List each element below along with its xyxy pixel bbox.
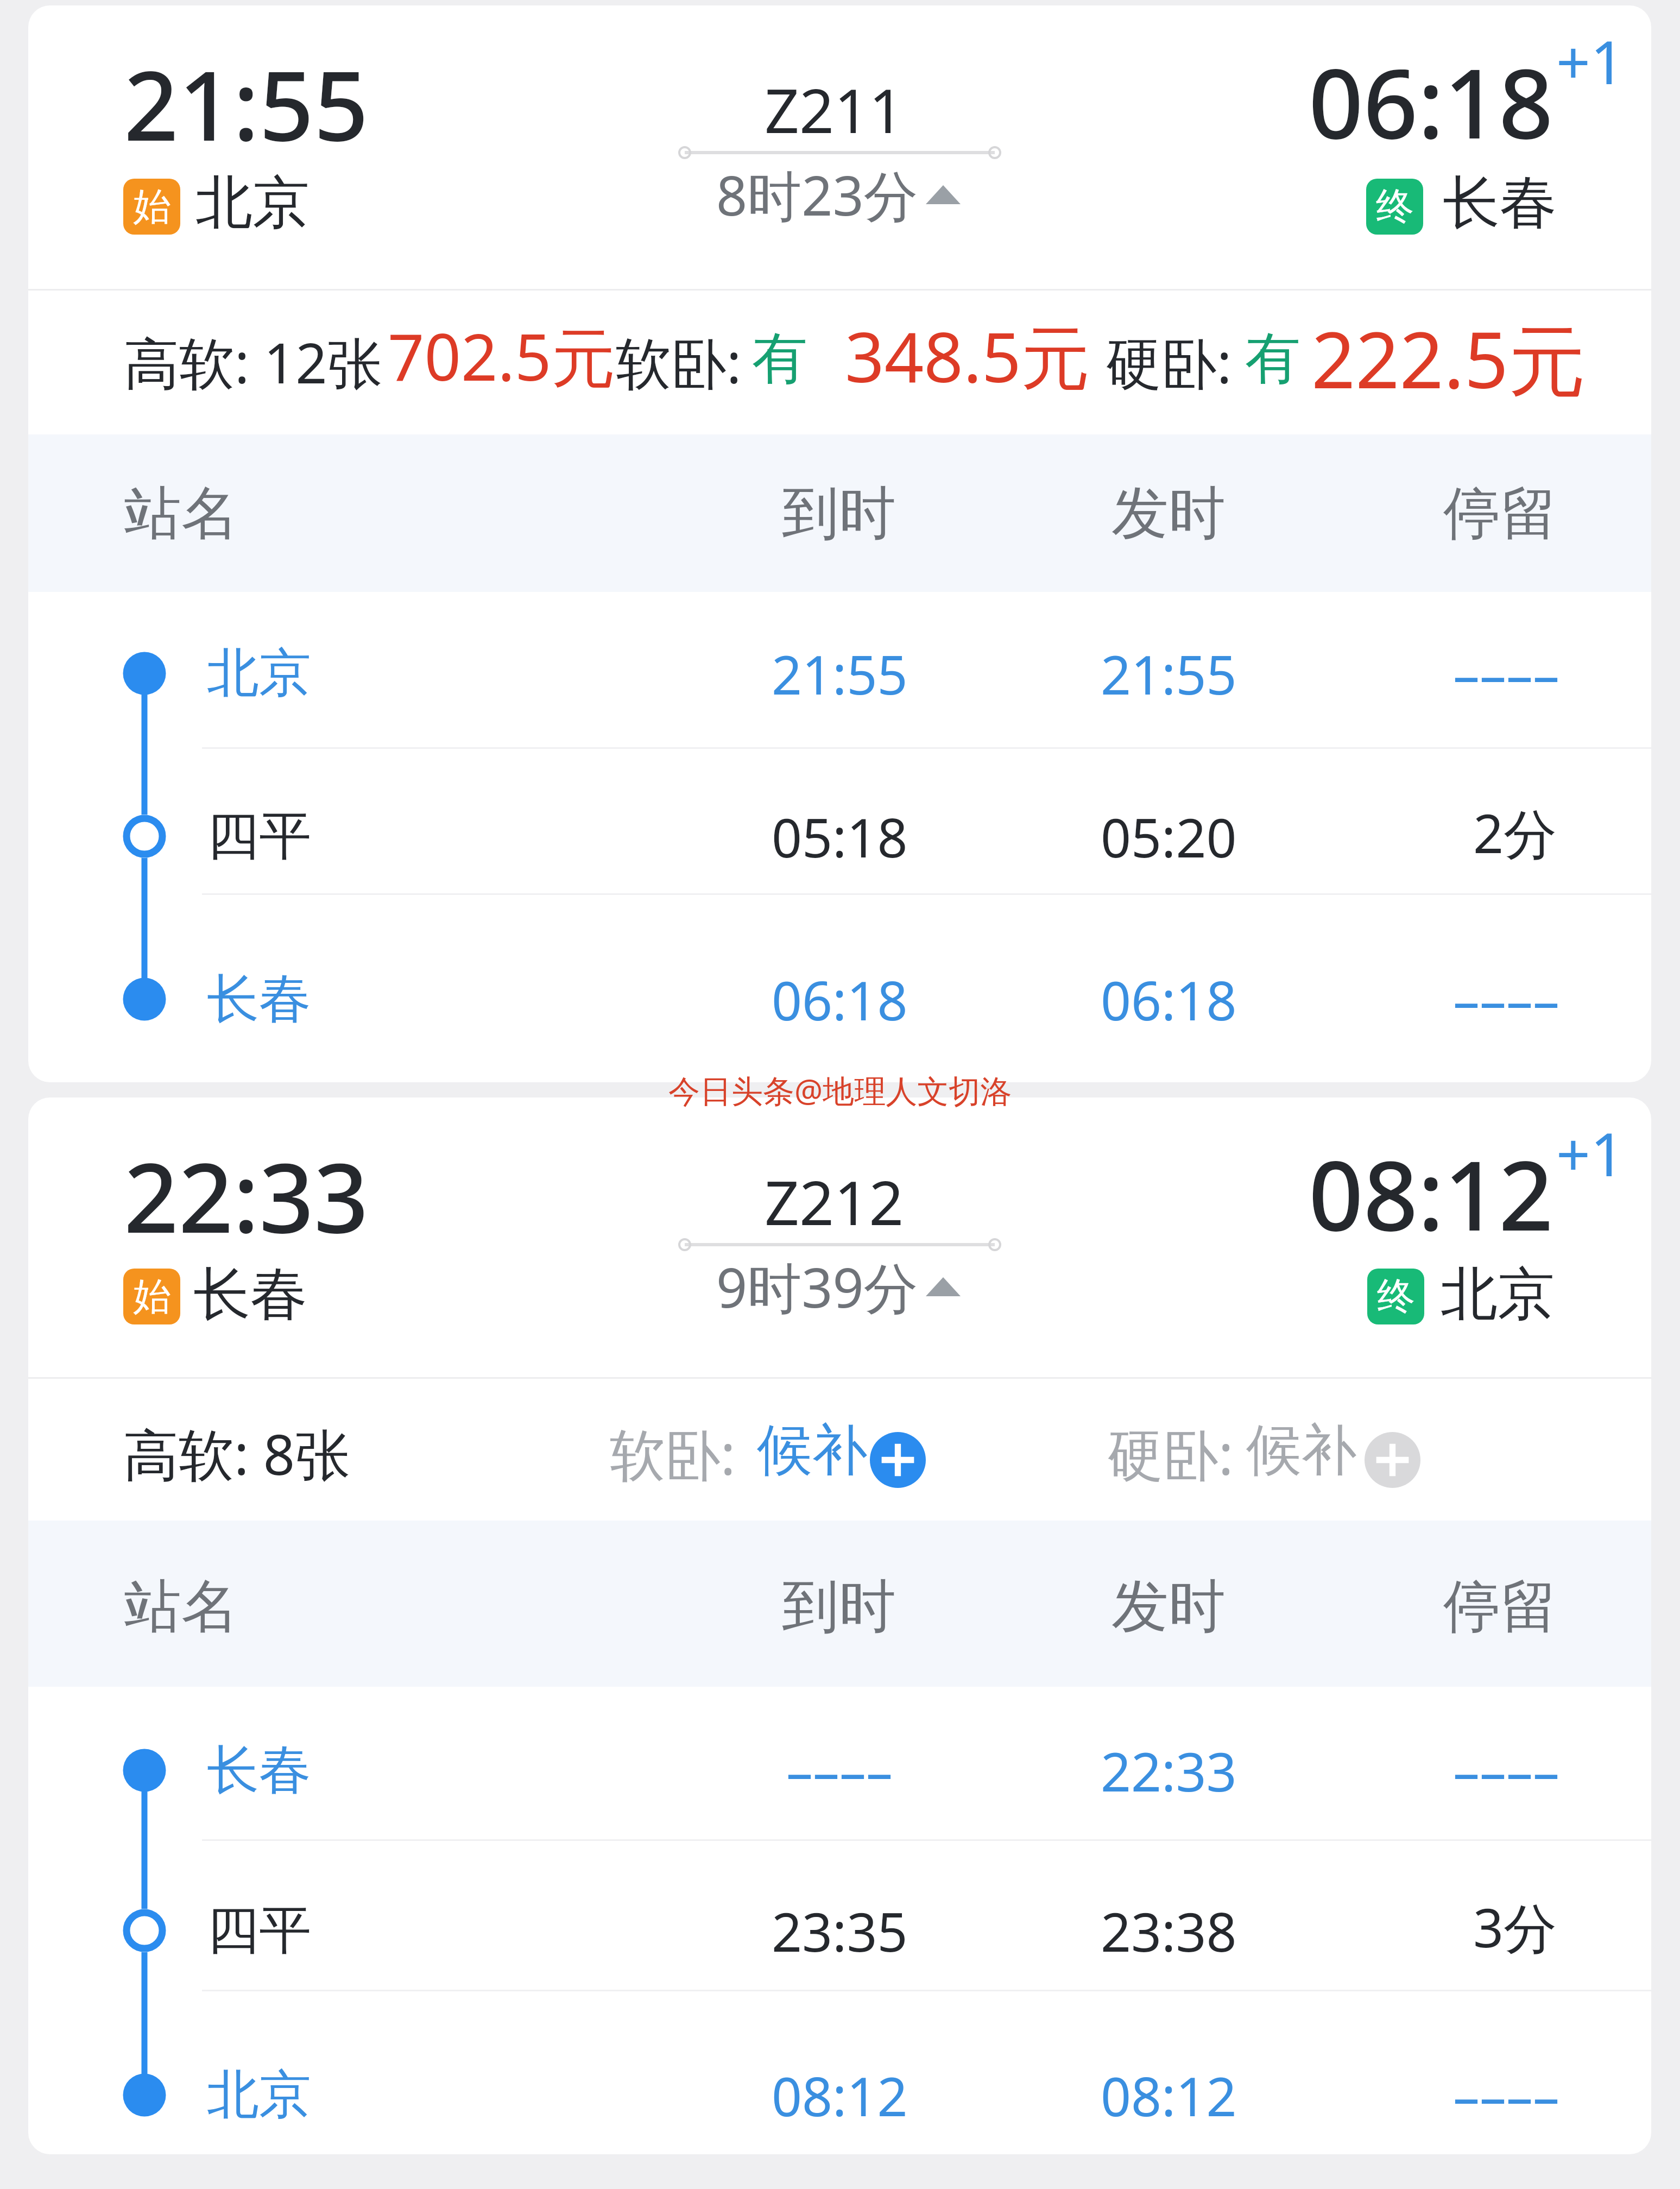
staticText: 高软: 8张 [123, 1416, 351, 1491]
staticText: 348.5元 [845, 308, 1090, 402]
staticText: 站名 [124, 1571, 238, 1643]
button[interactable]: 四平 [28, 1841, 1651, 1990]
staticText: +1 [1556, 20, 1625, 102]
button[interactable]: 长春 [28, 1687, 1651, 1839]
staticText: 9时39分 [716, 1250, 918, 1324]
button[interactable]: 北京 [28, 1991, 1651, 2154]
staticText: 08:12 [772, 2059, 908, 2131]
staticText: 发时 [1111, 478, 1226, 550]
staticText: 四平 [207, 1898, 311, 1964]
staticText: 到时 [782, 478, 896, 550]
staticText: 发时 [1111, 1571, 1226, 1643]
staticText: –––– [1453, 1734, 1560, 1807]
staticText: –––– [786, 1734, 893, 1807]
button[interactable]: 北京 [28, 592, 1651, 747]
staticText: 06:18 [772, 963, 908, 1036]
button[interactable]: 21:55 [28, 5, 1651, 1082]
staticText: 软卧: [610, 1416, 736, 1491]
staticText: 222.5元 [1311, 306, 1586, 411]
staticText: 21:55 [1101, 638, 1237, 710]
staticText: 2分 [1473, 796, 1557, 869]
staticText: 05:20 [1101, 800, 1237, 873]
staticText: 06:18 [1101, 963, 1237, 1036]
staticText: 21:55 [124, 39, 369, 169]
staticText: 四平 [207, 804, 311, 869]
staticText: 702.5元 [388, 312, 616, 400]
staticText: 始 [133, 183, 171, 231]
staticText: 停留 [1443, 1571, 1557, 1643]
staticText: 到时 [782, 1571, 896, 1643]
staticText: –––– [1453, 638, 1560, 710]
staticText: 停留 [1443, 478, 1557, 550]
button[interactable]: 22:33 [28, 1097, 1651, 2154]
staticText: 站名 [124, 478, 238, 550]
staticText: 8时23分 [716, 157, 918, 232]
staticText: 08:12 [1101, 2059, 1237, 2131]
staticText: 软卧: [616, 324, 742, 400]
staticText: +1 [1556, 1112, 1625, 1194]
staticText: 22:33 [124, 1131, 369, 1261]
staticText: 有 [752, 324, 807, 394]
staticText: 北京 [207, 2062, 311, 2128]
staticText: 长春 [207, 967, 311, 1032]
staticText: 北京 [195, 167, 310, 239]
button[interactable]: Add waitlist 硬卧 [1365, 1432, 1420, 1488]
staticText: 长春 [1443, 167, 1557, 239]
staticText: 05:18 [772, 800, 908, 873]
staticText: 长春 [207, 1738, 311, 1803]
staticText: 终 [1376, 183, 1414, 231]
button[interactable]: 长春 [28, 895, 1651, 1082]
staticText: 终 [1377, 1273, 1415, 1321]
button[interactable]: 四平 [28, 749, 1651, 893]
staticText: 硬卧: [1108, 1416, 1234, 1491]
button[interactable]: Add waitlist 软卧 [870, 1432, 926, 1488]
staticText: Z211 [765, 68, 904, 151]
staticText: Z212 [765, 1160, 904, 1243]
staticText: 23:35 [772, 1895, 908, 1967]
staticText: 22:33 [1101, 1734, 1237, 1807]
staticText: 今日头条@地理人文切洛 [668, 1069, 1012, 1112]
staticText: –––– [1453, 963, 1560, 1036]
staticText: 硬卧: [1106, 324, 1232, 400]
staticText: 北京 [1441, 1259, 1555, 1330]
staticText: 21:55 [772, 638, 908, 710]
staticText: 23:38 [1101, 1895, 1237, 1967]
staticText: 候补 [757, 1416, 868, 1485]
staticText: –––– [1453, 2059, 1560, 2131]
staticText: 有 [1245, 324, 1300, 394]
staticText: 始 [133, 1273, 171, 1321]
staticText: 3分 [1473, 1890, 1557, 1963]
staticText: 08:12 [1309, 1128, 1553, 1259]
staticText: 06:18 [1309, 36, 1553, 167]
staticText: 高软: 12张 [124, 324, 383, 400]
staticText: 北京 [207, 641, 311, 706]
staticText: 长春 [193, 1259, 307, 1330]
staticText: 候补 [1246, 1416, 1357, 1485]
